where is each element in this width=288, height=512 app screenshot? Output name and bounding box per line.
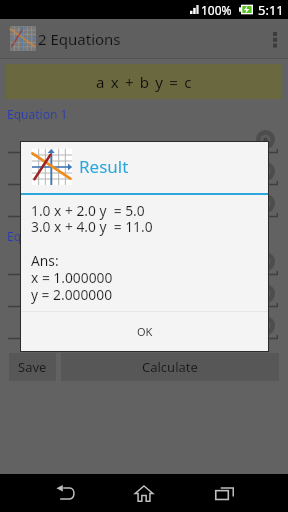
staticText: Equation 1 <box>7 106 68 122</box>
button[interactable]: constant c <box>8 191 160 218</box>
staticText: OK <box>137 324 153 339</box>
button[interactable]: Clear <box>256 130 275 149</box>
staticText: 5:11 <box>258 1 284 19</box>
button[interactable]: 1.0 <box>166 127 278 154</box>
button[interactable]: 3.0 <box>166 249 278 276</box>
button[interactable]: More options <box>262 19 288 59</box>
button[interactable]: OK <box>21 312 268 350</box>
staticText: 2 Equations <box>38 29 121 49</box>
button[interactable]: 5.0 <box>166 191 278 218</box>
staticText: Save <box>18 358 47 376</box>
button[interactable]: coefficient b <box>8 159 160 186</box>
button[interactable]: Clear <box>256 316 275 335</box>
button[interactable]: Clear <box>256 284 275 303</box>
staticText: coefficient b <box>22 293 92 309</box>
staticText: 1.0 <box>170 139 187 155</box>
staticText: 100% <box>201 2 232 18</box>
button[interactable]: 2.0 <box>166 159 278 186</box>
button[interactable]: Clear <box>256 194 275 213</box>
button[interactable]: Recent apps <box>201 474 247 512</box>
staticText: 1.0 x + 2.0 y = 5.0 3.0 x + 4.0 y = 11.0… <box>31 201 153 304</box>
button[interactable]: Home <box>121 474 167 512</box>
staticText: coefficient a <box>22 139 91 155</box>
staticText: coefficient a <box>22 261 91 277</box>
button[interactable]: 11.0 <box>166 313 278 340</box>
button[interactable]: coefficient a <box>8 249 160 276</box>
staticText: Equation 2 <box>7 228 68 244</box>
button[interactable]: coefficient a <box>8 127 160 154</box>
staticText: Calculate <box>142 358 198 376</box>
staticText: Result <box>79 155 129 178</box>
button[interactable]: Clear <box>256 162 275 181</box>
button[interactable]: 4.0 <box>166 281 278 308</box>
staticText: coefficient b <box>22 171 92 187</box>
staticText: a x + b y = c <box>96 72 193 92</box>
button[interactable]: Clear <box>256 252 275 271</box>
button[interactable]: Save <box>9 353 56 381</box>
button[interactable]: Back <box>42 474 88 512</box>
staticText: constant c <box>22 203 80 219</box>
button[interactable]: Calculate <box>61 353 279 381</box>
button[interactable]: coefficient b <box>8 281 160 308</box>
button[interactable]: constant c <box>8 313 160 340</box>
